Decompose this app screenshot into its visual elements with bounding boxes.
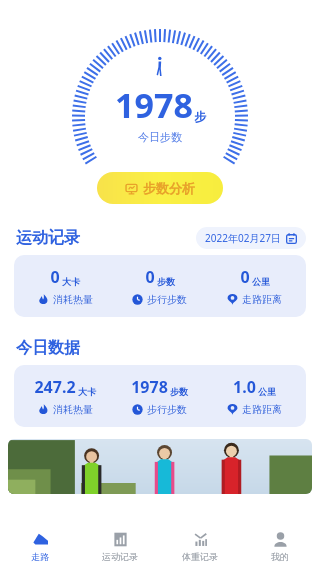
staticText: 步数 — [157, 276, 175, 287]
staticText: 运动记录 — [102, 551, 138, 562]
staticText: 1978 — [131, 376, 168, 398]
staticText: 消耗热量 — [53, 403, 93, 416]
staticText: 2022年02月27日 — [205, 231, 281, 245]
staticText: 247.2 — [34, 376, 76, 398]
staticText: 消耗热量 — [53, 293, 93, 306]
button[interactable]: 体重记录 — [160, 525, 240, 568]
button[interactable]: 247.2 — [14, 365, 306, 427]
staticText: 步数分析 — [143, 180, 195, 196]
button[interactable]: 0 — [14, 255, 306, 317]
staticText: 走路距离 — [242, 293, 282, 306]
staticText: 0 — [145, 266, 155, 288]
staticText: 步 — [194, 109, 206, 124]
staticText: 公里 — [252, 276, 270, 287]
button[interactable] — [8, 439, 312, 494]
button[interactable]: 运动记录 — [80, 525, 160, 568]
staticText: 公里 — [258, 386, 276, 397]
staticText: 大卡 — [62, 276, 80, 287]
staticText: 1978 — [115, 82, 193, 128]
staticText: 1.0 — [233, 376, 256, 398]
staticText: 步数 — [170, 386, 188, 397]
staticText: 大卡 — [78, 386, 96, 397]
staticText: 我的 — [271, 551, 289, 562]
button[interactable]: 走路 — [0, 525, 80, 568]
staticText: 走路距离 — [242, 403, 282, 416]
staticText: 今日数据 — [16, 338, 80, 358]
staticText: 今日步数 — [138, 130, 182, 144]
staticText: 0 — [50, 266, 60, 288]
staticText: 步行步数 — [147, 293, 187, 306]
staticText: 走路 — [31, 551, 49, 562]
staticText: 步行步数 — [147, 403, 187, 416]
staticText: 运动记录 — [16, 228, 80, 248]
staticText: 0 — [240, 266, 250, 288]
button[interactable]: 2022年02月27日 — [205, 231, 297, 245]
button[interactable]: 我的 — [240, 525, 320, 568]
button[interactable]: 步数分析 — [97, 172, 223, 204]
staticText: 体重记录 — [182, 551, 218, 562]
